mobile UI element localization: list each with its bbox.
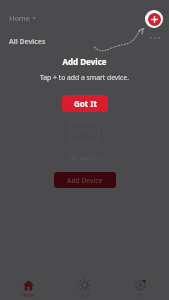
button[interactable]: Home — [9, 13, 36, 23]
staticText: Got It — [74, 98, 97, 109]
staticText: All Devices — [9, 37, 46, 46]
staticText: Add Device — [62, 56, 107, 67]
button[interactable]: Got It — [62, 95, 108, 112]
staticText: No devices — [70, 154, 100, 162]
button[interactable]: Smart — [64, 279, 104, 300]
button[interactable]: More options — [150, 37, 160, 39]
button[interactable]: Me — [120, 279, 160, 300]
staticText: Home — [9, 13, 30, 23]
button[interactable]: Add Device — [54, 172, 116, 188]
button[interactable]: Add device — [145, 10, 163, 28]
staticText: Tap + to add a smart device. — [40, 73, 129, 82]
button[interactable]: Home — [8, 279, 48, 300]
staticText: Home — [22, 292, 35, 298]
staticText: Add Device — [67, 176, 103, 185]
